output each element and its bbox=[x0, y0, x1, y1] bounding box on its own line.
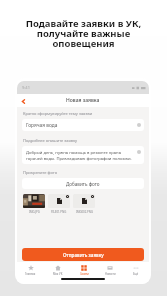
staticText: Отправить заявку bbox=[63, 252, 104, 258]
button[interactable]: Главная bbox=[17, 265, 44, 276]
button[interactable]: Добрый день, нужна помощь в ремонте кран… bbox=[22, 146, 144, 164]
staticText: Добрый день, нужна помощь в ремонте кран… bbox=[26, 150, 132, 162]
staticText: Добавить фото bbox=[66, 181, 100, 187]
staticText: Прикрепите фото bbox=[23, 170, 58, 175]
staticText: Новости bbox=[105, 272, 116, 276]
staticText: Заявки bbox=[80, 272, 89, 276]
staticText: Новая заявка bbox=[66, 97, 100, 104]
staticText: Ещё bbox=[133, 272, 139, 276]
button[interactable]: Заявки bbox=[71, 265, 97, 276]
staticText: FILE01.PNG bbox=[51, 210, 67, 214]
button[interactable]: Новости bbox=[97, 265, 123, 276]
button[interactable]: IMG.JPG bbox=[23, 194, 45, 214]
staticText: Подавайте заявки в УК, получайте важные … bbox=[0, 17, 167, 50]
button[interactable]: Назад bbox=[18, 96, 28, 106]
staticText: Главная bbox=[25, 272, 36, 276]
button[interactable]: Добавить фото bbox=[22, 178, 144, 189]
button[interactable]: IMG002.PNG bbox=[73, 194, 95, 214]
staticText: Подробнее опишите заявку bbox=[23, 138, 78, 143]
button[interactable]: Ещё bbox=[123, 265, 149, 276]
staticText: IMG002.PNG bbox=[76, 210, 93, 214]
staticText: IMG.JPG bbox=[29, 210, 40, 214]
button[interactable]: Горячая вода bbox=[22, 119, 144, 131]
button[interactable]: FILE01.PNG bbox=[48, 194, 70, 214]
staticText: Кратко сформулируйте тему заявки bbox=[23, 111, 93, 116]
staticText: Горячая вода bbox=[26, 122, 58, 129]
staticText: Моя УК bbox=[53, 272, 63, 276]
staticText: 9:41 bbox=[22, 85, 30, 90]
button[interactable]: Отправить заявку bbox=[22, 248, 144, 261]
button[interactable]: Моя УК bbox=[44, 265, 71, 276]
